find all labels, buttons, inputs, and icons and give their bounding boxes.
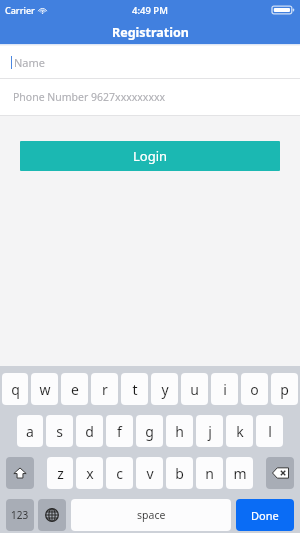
button[interactable]: Shift [6, 457, 34, 489]
staticText: Registration [112, 24, 189, 41]
button[interactable]: u [181, 373, 208, 405]
button[interactable]: k [226, 415, 253, 447]
staticText: h [175, 422, 184, 441]
button[interactable]: z [47, 457, 73, 489]
staticText: Phone Number 9627xxxxxxxxx [13, 90, 166, 104]
button[interactable]: Change keyboard language [38, 499, 66, 531]
staticText: q [11, 380, 20, 399]
staticText: r [102, 380, 108, 399]
staticText: p [280, 380, 289, 399]
button[interactable]: c [106, 457, 133, 489]
button[interactable]: g [136, 415, 163, 447]
staticText: u [190, 380, 199, 399]
staticText: k [236, 422, 244, 441]
staticText: b [175, 464, 184, 483]
staticText: 123 [11, 508, 29, 522]
button[interactable]: w [31, 373, 58, 405]
button[interactable]: l [256, 415, 283, 447]
staticText: 4:49 PM [132, 4, 168, 17]
button[interactable]: x [76, 457, 103, 489]
staticText: e [71, 380, 79, 399]
staticText: c [116, 464, 123, 483]
staticText: d [85, 422, 94, 441]
staticText: g [145, 422, 154, 441]
button[interactable]: s [46, 415, 73, 447]
button[interactable]: b [166, 457, 193, 489]
button[interactable]: 123 [6, 499, 34, 531]
button[interactable]: t [121, 373, 148, 405]
staticText: f [117, 422, 122, 441]
staticText: m [233, 464, 247, 483]
button[interactable]: Login [20, 141, 280, 171]
staticText: i [223, 380, 227, 399]
staticText: v [146, 464, 154, 483]
staticText: space [137, 508, 166, 522]
staticText: w [39, 380, 51, 399]
button[interactable]: q [2, 373, 28, 405]
button[interactable]: e [61, 373, 88, 405]
staticText: Name [14, 55, 46, 70]
staticText: Login [133, 147, 168, 165]
button[interactable]: a [17, 415, 43, 447]
button[interactable]: f [106, 415, 133, 447]
button[interactable]: d [76, 415, 103, 447]
button[interactable]: space [71, 499, 231, 531]
button[interactable]: n [196, 457, 223, 489]
staticText: Done [251, 508, 279, 523]
button[interactable]: Phone Number 9627xxxxxxxxx [0, 79, 300, 115]
staticText: y [161, 380, 169, 399]
staticText: x [86, 464, 94, 483]
button[interactable]: v [136, 457, 163, 489]
button[interactable]: m [226, 457, 253, 489]
staticText: j [208, 422, 212, 441]
button[interactable]: p [271, 373, 298, 405]
button[interactable]: j [196, 415, 223, 447]
button[interactable]: h [166, 415, 193, 447]
staticText: l [268, 422, 272, 441]
staticText: a [26, 422, 34, 441]
button[interactable]: r [91, 373, 118, 405]
staticText: s [56, 422, 63, 441]
staticText: z [57, 464, 64, 483]
staticText: n [205, 464, 214, 483]
button[interactable]: Name [0, 46, 300, 78]
button[interactable]: Delete [266, 457, 294, 489]
staticText: Carrier [5, 4, 35, 16]
staticText: o [250, 380, 259, 399]
button[interactable]: y [151, 373, 178, 405]
button[interactable]: o [241, 373, 268, 405]
button[interactable]: Done [236, 499, 294, 531]
button[interactable]: i [211, 373, 238, 405]
staticText: t [132, 380, 138, 399]
